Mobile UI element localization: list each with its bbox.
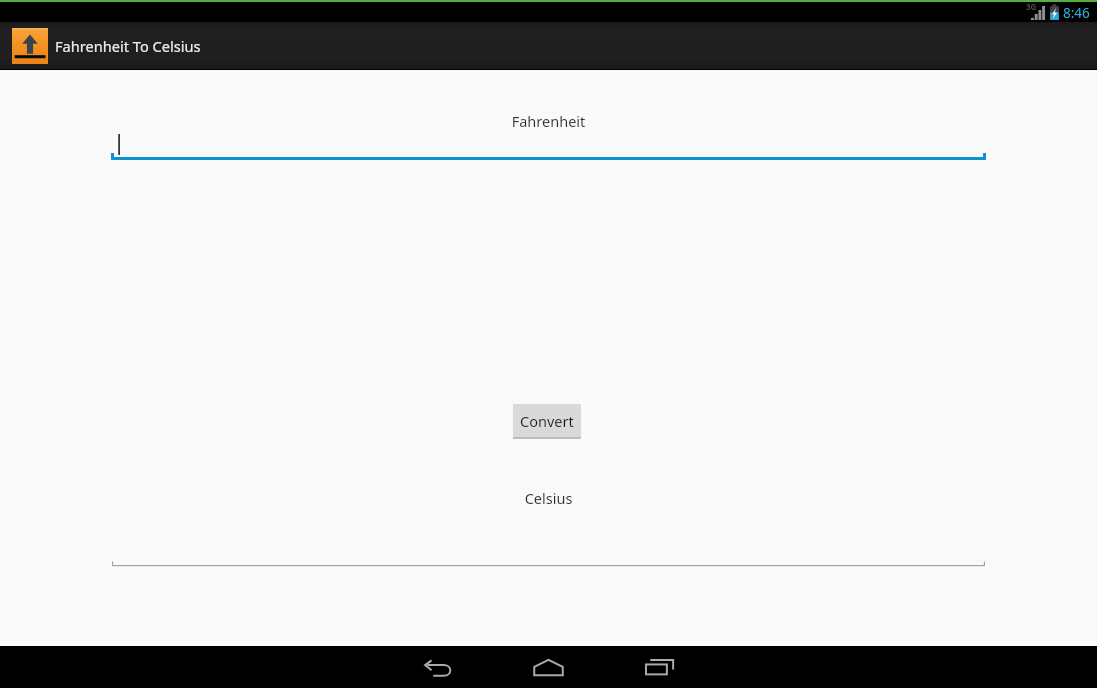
staticText: 8:46: [1063, 4, 1090, 22]
staticText: Fahrenheit: [0, 111, 1097, 131]
button[interactable]: Navigate up: [12, 28, 48, 64]
button[interactable]: Fahrenheit input: [111, 128, 986, 164]
staticText: Celsius: [0, 488, 1097, 508]
button[interactable]: Recent apps: [631, 646, 687, 688]
button[interactable]: Home: [520, 646, 576, 688]
button[interactable]: Celsius result: [112, 548, 985, 570]
staticText: 3G: [1026, 1, 1037, 12]
staticText: Fahrenheit To Celsius: [55, 36, 201, 56]
button[interactable]: Convert: [513, 404, 581, 439]
button[interactable]: Back: [410, 646, 466, 688]
staticText: Convert: [520, 411, 574, 431]
